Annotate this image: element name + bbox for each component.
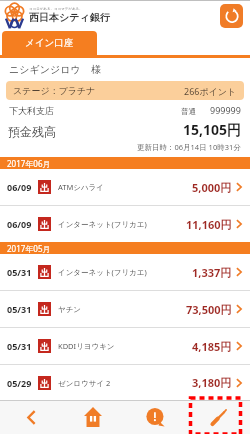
staticText: ヤチン [58, 305, 82, 314]
staticText: インターネット(フリカエ) [58, 219, 147, 229]
staticText: 73,500円 [186, 302, 232, 317]
staticText: インターネット(フリカエ) [58, 267, 147, 277]
staticText: ニシギンジロウ [9, 63, 81, 76]
staticText: 2017年06月 [7, 158, 51, 169]
button[interactable]: Settings [187, 400, 250, 434]
button[interactable]: Refresh [220, 4, 243, 28]
button[interactable]: 05/31 [0, 254, 250, 290]
staticText: 5,000円 [192, 180, 232, 195]
staticText: メイン口座 [25, 37, 74, 49]
staticText: 普通 [181, 107, 196, 116]
staticText: 1,337円 [192, 265, 232, 280]
staticText: 様 [91, 63, 101, 76]
button[interactable]: Notifications [124, 400, 187, 434]
staticText: 06/09 [7, 218, 32, 230]
staticText: 11,160円 [186, 217, 232, 232]
staticText: 3,180円 [192, 375, 232, 390]
button[interactable]: Back [0, 400, 62, 434]
button[interactable]: 05/31 [0, 328, 250, 364]
staticText: 2017年05月 [7, 243, 51, 254]
staticText: 05/31 [7, 303, 32, 315]
staticText: ステージ：プラチナ [13, 85, 96, 96]
button[interactable]: メイン口座 [2, 31, 97, 55]
button[interactable]: 05/29 [0, 365, 250, 400]
staticText: 4,185円 [192, 339, 232, 354]
staticText: 更新日時：06月14日 10時31分 [137, 142, 241, 152]
staticText: 西日本シティ銀行 [29, 11, 110, 24]
button[interactable]: 05/31 [0, 291, 250, 327]
button[interactable]: Home [62, 400, 124, 434]
staticText: 05/29 [7, 377, 32, 389]
button[interactable]: 06/09 [0, 206, 250, 242]
staticText: 05/31 [7, 266, 32, 278]
staticText: ATMシハライ [58, 182, 104, 192]
staticText: ココロがある。ココマデがある。 [29, 7, 83, 11]
staticText: 999999 [210, 104, 241, 116]
staticText: 15,105円 [183, 120, 242, 139]
staticText: 266ポイント [184, 85, 237, 97]
staticText: ゼンロウサイ 2 [58, 378, 111, 388]
staticText: 06/09 [7, 181, 32, 193]
staticText: 下大利支店 [9, 105, 54, 116]
button[interactable]: 06/09 [0, 169, 250, 205]
staticText: 預金残高 [8, 124, 56, 139]
staticText: KDDIリヨウキン [58, 341, 115, 351]
staticText: 05/31 [7, 340, 32, 352]
